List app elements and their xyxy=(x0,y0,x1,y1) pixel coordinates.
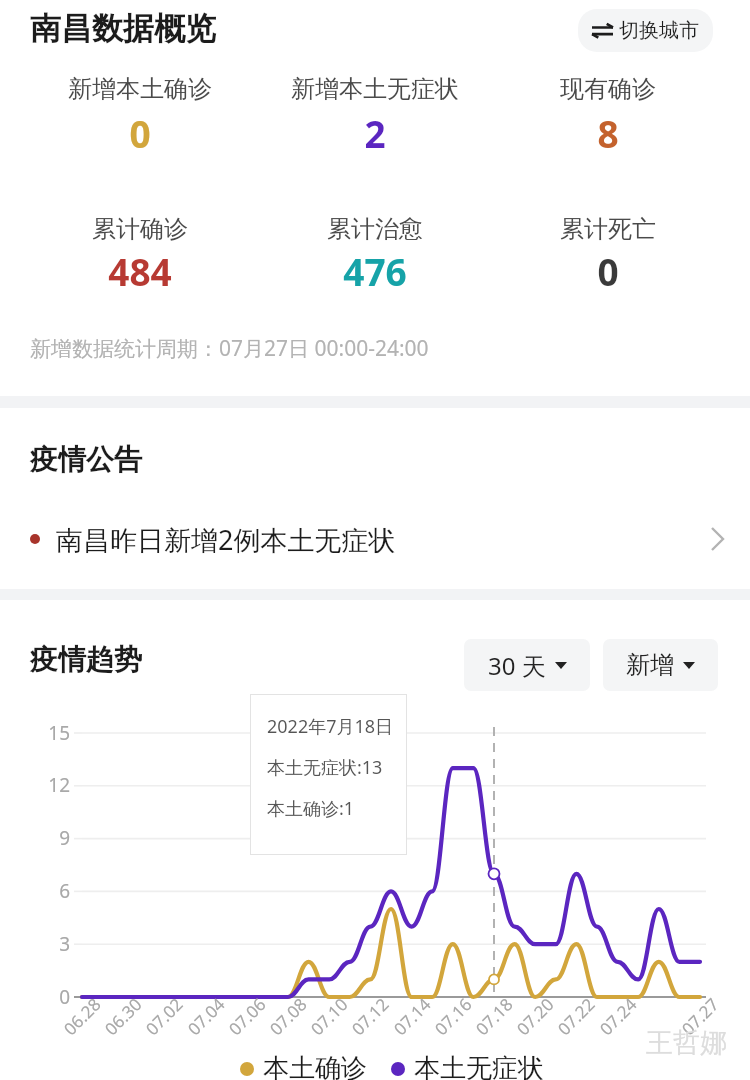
staticText: 07.27 xyxy=(658,974,742,1058)
button[interactable]: 30 天 xyxy=(464,639,590,691)
staticText: 07.10 xyxy=(287,974,371,1058)
staticText: 484 xyxy=(25,246,255,296)
staticText: 南昌昨日新增2例本土无症状 xyxy=(56,521,396,558)
staticText: 07.22 xyxy=(534,974,618,1058)
staticText: 9 xyxy=(28,825,70,851)
staticText: 2022年7月18日 xyxy=(267,714,394,739)
staticText: 新增 xyxy=(626,650,674,680)
staticText: 3 xyxy=(28,931,70,957)
staticText: 07.24 xyxy=(576,974,660,1058)
staticText: 0 xyxy=(25,108,255,158)
staticText: 新增本土确诊 xyxy=(25,74,255,104)
staticText: 0 xyxy=(28,984,70,1010)
button[interactable]: 新增 xyxy=(603,639,718,691)
staticText: 12 xyxy=(28,772,70,798)
staticText: 07.18 xyxy=(452,974,536,1058)
staticText: 06.30 xyxy=(81,974,165,1058)
staticText: 476 xyxy=(260,246,490,296)
staticText: 疫情公告 xyxy=(30,442,142,477)
staticText: 本土无症状 xyxy=(414,1052,544,1080)
button[interactable]: 南昌昨日新增2例本土无症状 xyxy=(0,510,750,568)
staticText: 本土确诊 xyxy=(263,1052,367,1080)
staticText: 累计确诊 xyxy=(25,214,255,244)
staticText: 南昌数据概览 xyxy=(30,9,216,48)
staticText: 新增本土无症状 xyxy=(260,74,490,104)
staticText: 07.04 xyxy=(164,974,248,1058)
staticText: 07.08 xyxy=(246,974,330,1058)
staticText: 15 xyxy=(28,720,70,746)
staticText: 本土确诊:1 xyxy=(267,796,355,821)
staticText: 切换城市 xyxy=(619,18,699,43)
staticText: 现有确诊 xyxy=(493,74,723,104)
staticText: 07.14 xyxy=(370,974,454,1058)
staticText: 8 xyxy=(493,108,723,158)
staticText: 疫情趋势 xyxy=(30,642,142,677)
staticText: 07.06 xyxy=(205,974,289,1058)
staticText: 累计治愈 xyxy=(260,214,490,244)
staticText: 07.02 xyxy=(122,974,206,1058)
staticText: 06.28 xyxy=(40,974,124,1058)
staticText: 本土无症状:13 xyxy=(267,755,383,780)
staticText: 30 天 xyxy=(488,649,546,682)
staticText: 累计死亡 xyxy=(493,214,723,244)
staticText: 2 xyxy=(260,108,490,158)
staticText: 07.16 xyxy=(411,974,495,1058)
staticText: 6 xyxy=(28,878,70,904)
staticText: 07.20 xyxy=(493,974,577,1058)
button[interactable]: 切换城市 xyxy=(578,9,713,52)
staticText: 07.12 xyxy=(328,974,412,1058)
staticText: 王哲娜 xyxy=(646,1026,727,1060)
staticText: 0 xyxy=(493,246,723,296)
staticText: 新增数据统计周期：07月27日 00:00-24:00 xyxy=(30,334,429,363)
